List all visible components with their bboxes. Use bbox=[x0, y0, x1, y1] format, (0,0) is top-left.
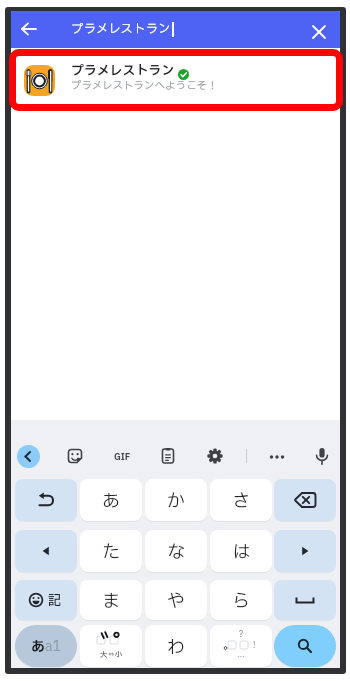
button[interactable] bbox=[17, 445, 40, 468]
button[interactable]: GIF bbox=[108, 447, 136, 465]
staticText: た bbox=[102, 539, 120, 566]
button[interactable] bbox=[206, 447, 224, 465]
button[interactable]: わ bbox=[145, 625, 207, 667]
button[interactable] bbox=[274, 479, 336, 521]
button[interactable]: は bbox=[210, 530, 272, 572]
staticText: あa1 bbox=[31, 636, 62, 657]
staticText: や bbox=[167, 588, 185, 615]
button[interactable]: 記 bbox=[15, 580, 77, 620]
button[interactable]: ま bbox=[80, 580, 142, 620]
button[interactable]: ? bbox=[210, 625, 272, 667]
button[interactable]: あ bbox=[80, 479, 142, 521]
button[interactable] bbox=[15, 479, 77, 521]
button[interactable]: あa1 bbox=[15, 625, 77, 667]
button[interactable] bbox=[265, 447, 289, 465]
staticText: ? bbox=[239, 629, 243, 639]
button[interactable]: ら bbox=[210, 580, 272, 620]
staticText: わ bbox=[167, 634, 185, 661]
staticText: GIF bbox=[114, 450, 131, 463]
button[interactable] bbox=[306, 19, 332, 45]
staticText: 記 bbox=[48, 591, 62, 610]
staticText: な bbox=[167, 539, 185, 566]
button[interactable]: や bbox=[145, 580, 207, 620]
staticText: か bbox=[167, 488, 185, 515]
button[interactable]: プラメレストラン bbox=[11, 56, 340, 114]
button[interactable]: た bbox=[80, 530, 142, 572]
button[interactable] bbox=[17, 17, 41, 41]
button[interactable] bbox=[274, 580, 336, 620]
button[interactable]: 大⇔小 bbox=[80, 625, 142, 667]
button[interactable]: な bbox=[145, 530, 207, 572]
button[interactable] bbox=[159, 447, 177, 465]
button[interactable] bbox=[66, 447, 84, 465]
button[interactable] bbox=[15, 530, 77, 572]
staticText: さ bbox=[232, 488, 250, 515]
staticText: プラメレストラン bbox=[71, 61, 175, 79]
staticText: ! bbox=[253, 640, 256, 650]
button[interactable]: さ bbox=[210, 479, 272, 521]
staticText: … bbox=[237, 652, 245, 662]
button[interactable] bbox=[274, 530, 336, 572]
staticText: ら bbox=[232, 588, 250, 615]
staticText: ま bbox=[102, 588, 120, 615]
staticText: 大⇔小 bbox=[100, 649, 123, 660]
staticText: プラメレストラン bbox=[71, 20, 171, 39]
staticText: プラメレストランへようこそ！ bbox=[71, 78, 218, 94]
button[interactable] bbox=[274, 625, 336, 667]
button[interactable] bbox=[313, 446, 331, 466]
button[interactable]: か bbox=[145, 479, 207, 521]
staticText: は bbox=[232, 539, 250, 566]
staticText: あ bbox=[102, 488, 120, 515]
